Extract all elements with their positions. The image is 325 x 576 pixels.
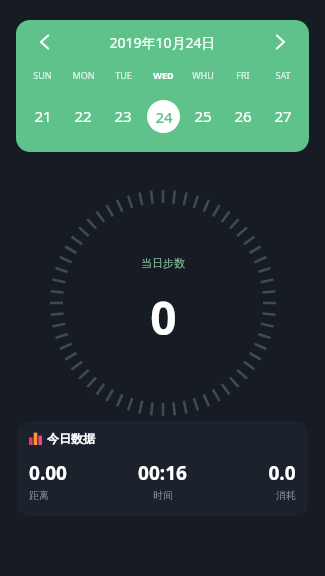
staticText: 24 (155, 107, 173, 127)
staticText: 26 (234, 106, 252, 126)
staticText: SAT (275, 69, 291, 81)
staticText: 今日数据 (47, 431, 95, 446)
staticText: 21 (34, 106, 52, 126)
button[interactable]: Next day (265, 27, 295, 57)
staticText: FRI (236, 69, 250, 81)
button[interactable]: 27 (263, 96, 303, 136)
staticText: WED (153, 69, 174, 81)
button[interactable]: 25 (183, 96, 223, 136)
staticText: 0.00 (29, 460, 67, 486)
button[interactable]: 21 (22, 96, 63, 136)
button[interactable]: 26 (223, 96, 263, 136)
button[interactable]: 今日数据 (17, 421, 308, 516)
staticText: TUE (115, 69, 132, 81)
staticText: SUN (33, 69, 52, 81)
staticText: 00:16 (138, 460, 187, 486)
staticText: WHU (192, 69, 214, 81)
staticText: MON (72, 69, 95, 81)
staticText: 23 (114, 106, 132, 126)
staticText: 0 (150, 286, 177, 349)
button[interactable]: 23 (103, 96, 143, 136)
staticText: 距离 (29, 489, 49, 502)
staticText: 当日步数 (141, 256, 185, 270)
staticText: 消耗 (276, 489, 296, 502)
staticText: 22 (74, 106, 92, 126)
staticText: 2019年10月24日 (109, 33, 216, 52)
staticText: 0.0 (268, 460, 296, 486)
button[interactable]: 24 (143, 96, 183, 136)
button[interactable]: Previous day (30, 27, 60, 57)
staticText: 时间 (153, 489, 173, 502)
staticText: 25 (194, 106, 212, 126)
button[interactable]: 22 (63, 96, 103, 136)
staticText: 27 (274, 106, 292, 126)
